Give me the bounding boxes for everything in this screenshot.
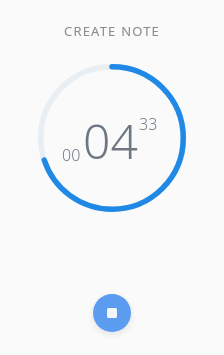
staticText: CREATE NOTE — [0, 22, 224, 40]
button[interactable]: Stop recording — [93, 294, 131, 332]
staticText: 00 — [62, 144, 81, 166]
staticText: 04 — [83, 108, 138, 173]
staticText: 33 — [139, 113, 158, 135]
